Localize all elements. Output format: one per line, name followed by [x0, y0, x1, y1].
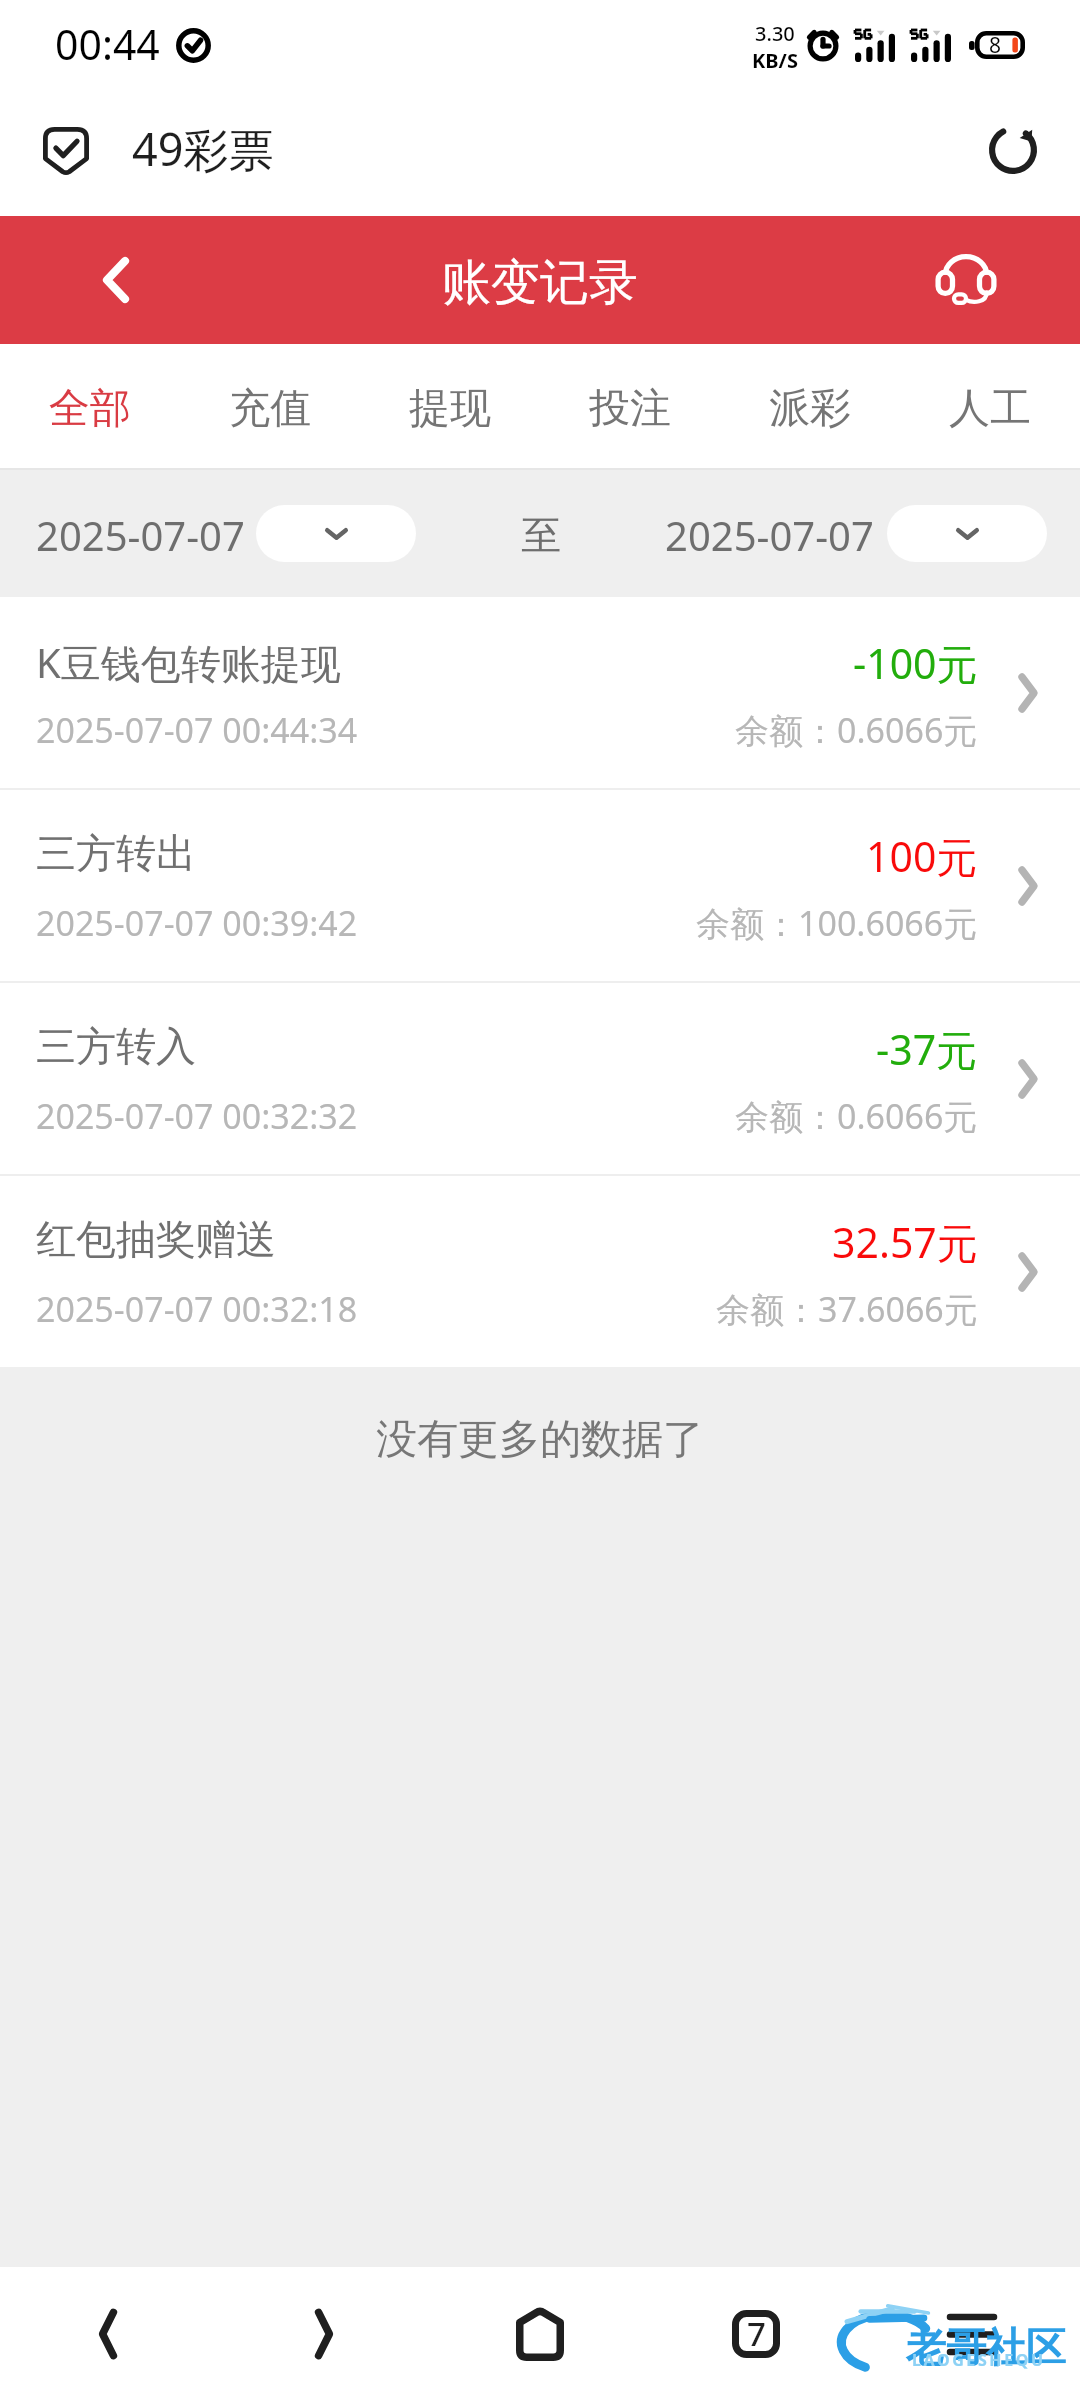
- staticText: 49彩票: [132, 118, 274, 179]
- staticText: -100元: [853, 635, 978, 691]
- staticText: 2025-07-07 00:44:34: [36, 707, 358, 753]
- staticText: 2025-07-07: [36, 508, 245, 562]
- button[interactable]: 充值: [180, 344, 360, 470]
- staticText: 余额：100.6066元: [696, 900, 978, 946]
- button[interactable]: 全部: [0, 344, 180, 470]
- staticText: 红包抽奖赠送: [36, 1214, 276, 1264]
- staticText: 2025-07-07 00:32:18: [36, 1286, 358, 1332]
- staticText: 8: [989, 31, 1002, 59]
- button[interactable]: 派彩: [720, 344, 900, 470]
- staticText: 三方转入: [36, 1021, 196, 1071]
- button[interactable]: Refresh: [969, 106, 1057, 194]
- button[interactable]: Pick date: [887, 505, 1047, 562]
- staticText: 派彩: [769, 383, 851, 435]
- staticText: 提现: [409, 383, 491, 435]
- staticText: 余额：0.6066元: [735, 1093, 978, 1139]
- button[interactable]: Menu: [934, 2296, 1010, 2372]
- button[interactable]: Back: [70, 2296, 146, 2372]
- button[interactable]: 投注: [540, 344, 720, 470]
- staticText: 100元: [866, 828, 978, 884]
- button[interactable]: Tabs: [721, 2299, 791, 2369]
- staticText: 余额：37.6066元: [716, 1286, 978, 1332]
- staticText: 人工: [949, 383, 1031, 435]
- staticText: KB/S: [752, 47, 798, 74]
- staticText: 2025-07-07 00:39:42: [36, 900, 358, 946]
- staticText: 全部: [49, 383, 131, 435]
- staticText: 2025-07-07 00:32:32: [36, 1093, 358, 1139]
- staticText: 没有更多的数据了: [376, 1414, 704, 1466]
- button[interactable]: K豆钱包转账提现: [0, 597, 1080, 788]
- staticText: 7: [747, 2311, 766, 2356]
- staticText: LAOGESHEQU: [912, 2349, 1046, 2371]
- button[interactable]: 三方转出: [0, 790, 1080, 981]
- button[interactable]: 人工: [900, 344, 1080, 470]
- staticText: 账变记录: [442, 252, 638, 314]
- staticText: 2025-07-07: [665, 508, 874, 562]
- staticText: 充值: [229, 383, 311, 435]
- staticText: -37元: [876, 1021, 978, 1077]
- staticText: 3.30: [755, 20, 795, 47]
- staticText: 00:44: [55, 16, 160, 72]
- staticText: 至: [521, 510, 561, 560]
- button[interactable]: Back: [0, 216, 128, 344]
- staticText: 老哥社区: [906, 2322, 1066, 2372]
- button[interactable]: 提现: [360, 344, 540, 470]
- button[interactable]: Pick date: [256, 505, 416, 562]
- button[interactable]: 三方转入: [0, 983, 1080, 1174]
- button[interactable]: Site security info: [23, 107, 109, 196]
- button[interactable]: Home: [502, 2296, 578, 2372]
- button[interactable]: Forward: [286, 2296, 362, 2372]
- staticText: 32.57元: [832, 1214, 978, 1270]
- staticText: K豆钱包转账提现: [36, 635, 341, 690]
- staticText: 投注: [589, 383, 671, 435]
- button[interactable]: Customer service: [902, 216, 1030, 344]
- staticText: 三方转出: [36, 828, 196, 878]
- button[interactable]: 红包抽奖赠送: [0, 1176, 1080, 1367]
- staticText: 余额：0.6066元: [735, 707, 978, 753]
